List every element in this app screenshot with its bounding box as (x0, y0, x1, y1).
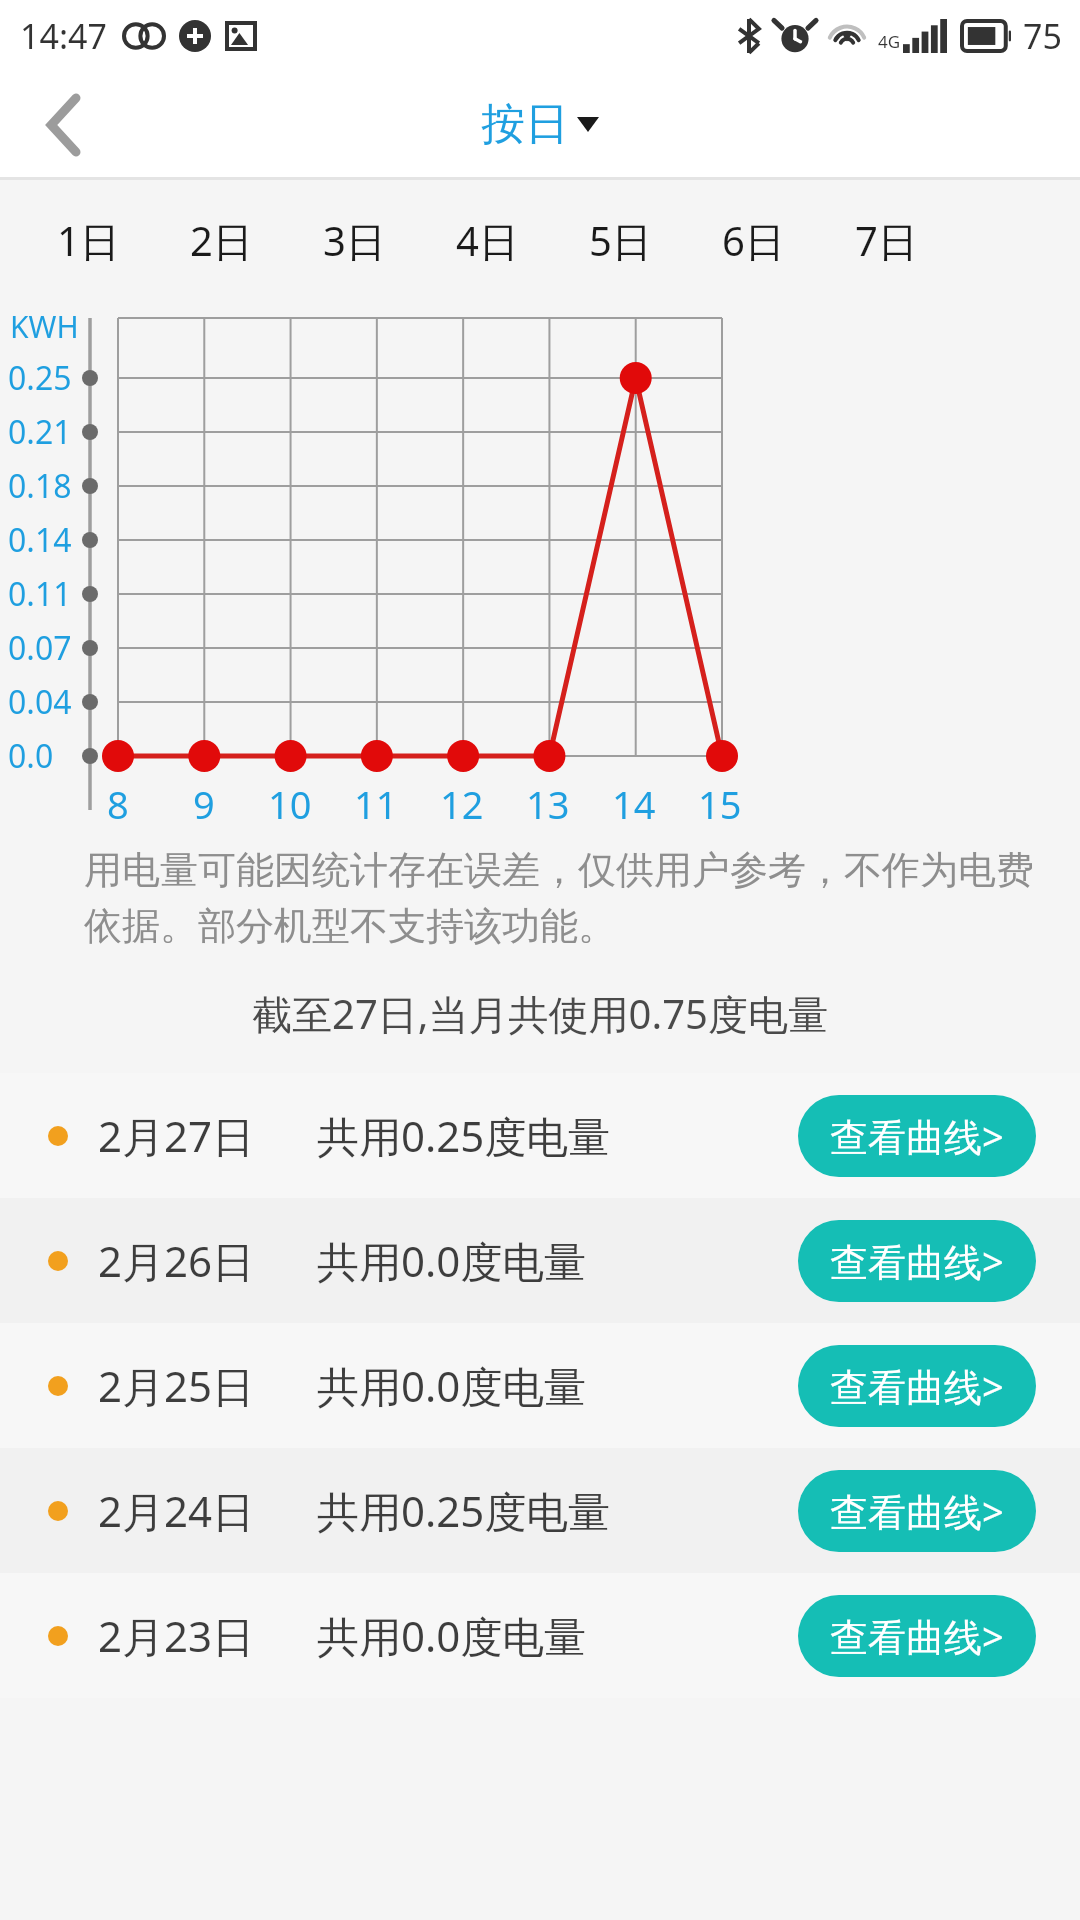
staticText: 14:47 (20, 13, 107, 59)
button[interactable]: 按日 (473, 89, 607, 160)
staticText: 75 (1023, 13, 1062, 59)
staticText: 共用0.0度电量 (317, 1607, 587, 1664)
staticText: 0.21 (8, 410, 72, 454)
staticText: 2日 (190, 213, 253, 268)
staticText: 2月25日 (98, 1357, 255, 1414)
staticText: 5日 (589, 213, 652, 268)
staticText: 15 (698, 778, 742, 830)
staticText: 2月26日 (98, 1232, 255, 1289)
button[interactable]: 2月23日 (0, 1573, 1080, 1698)
staticText: 6日 (722, 213, 785, 268)
staticText: 按日 (481, 97, 569, 152)
staticText: 查看曲线> (830, 1235, 1004, 1287)
button[interactable]: 4日 (421, 180, 554, 300)
button[interactable]: 5日 (554, 180, 687, 300)
staticText: 查看曲线> (830, 1485, 1004, 1537)
staticText: 1日 (57, 213, 120, 268)
button[interactable]: 查看曲线> (798, 1220, 1036, 1302)
staticText: 2月23日 (98, 1607, 255, 1664)
staticText: 8 (107, 778, 129, 830)
button[interactable]: 7日 (820, 180, 953, 300)
button[interactable]: 2月25日 (0, 1323, 1080, 1448)
staticText: 3日 (323, 213, 386, 268)
staticText: 11 (354, 778, 398, 830)
staticText: 共用0.0度电量 (317, 1357, 587, 1414)
button[interactable]: 1日 (22, 180, 155, 300)
button[interactable]: 2月26日 (0, 1198, 1080, 1323)
button[interactable]: 2日 (155, 180, 288, 300)
staticText: 0.07 (8, 626, 72, 670)
button[interactable]: 查看曲线> (798, 1345, 1036, 1427)
button[interactable]: 查看曲线> (798, 1595, 1036, 1677)
staticText: 截至27日,当月共使用0.75度电量 (252, 986, 828, 1041)
staticText: 4日 (456, 213, 519, 268)
button[interactable]: 2月27日 (0, 1073, 1080, 1198)
staticText: 0.25 (8, 356, 72, 400)
staticText: 0.04 (8, 680, 72, 724)
staticText: 用电量可能因统计存在误差，仅供用户参考，不作为电费依据。部分机型不支持该功能。 (84, 846, 1050, 950)
staticText: 2月27日 (98, 1107, 255, 1164)
button[interactable]: 3日 (288, 180, 421, 300)
staticText: 查看曲线> (830, 1110, 1004, 1162)
staticText: 12 (440, 778, 484, 830)
staticText: 4G (878, 30, 901, 53)
staticText: 0.14 (8, 518, 72, 562)
staticText: 13 (526, 778, 570, 830)
staticText: 0.0 (8, 734, 54, 778)
staticText: 7日 (855, 213, 918, 268)
staticText: 14 (612, 778, 656, 830)
staticText: 0.11 (8, 572, 72, 616)
staticText: 共用0.25度电量 (317, 1107, 611, 1164)
staticText: 0.18 (8, 464, 72, 508)
staticText: 10 (268, 778, 312, 830)
staticText: KWH (10, 306, 79, 347)
button[interactable]: 6日 (687, 180, 820, 300)
button[interactable]: Back (16, 77, 112, 173)
button[interactable]: 2月24日 (0, 1448, 1080, 1573)
staticText: 共用0.0度电量 (317, 1232, 587, 1289)
staticText: 共用0.25度电量 (317, 1482, 611, 1539)
button[interactable]: 查看曲线> (798, 1095, 1036, 1177)
staticText: 查看曲线> (830, 1610, 1004, 1662)
button[interactable]: 查看曲线> (798, 1470, 1036, 1552)
staticText: 2月24日 (98, 1482, 255, 1539)
staticText: 查看曲线> (830, 1360, 1004, 1412)
staticText: 9 (193, 778, 215, 830)
